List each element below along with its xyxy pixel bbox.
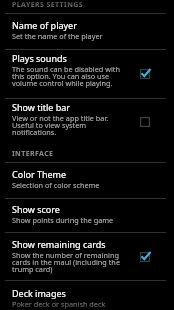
staticText: Show score [12,203,60,215]
staticText: Show points during the game [12,215,114,225]
staticText: Name of player [12,19,77,31]
staticText: Show the number of remaining cards in th… [12,250,125,274]
staticText: The sound can be disabled with this opti… [12,64,125,88]
staticText: View or not the app title bar. Useful to… [12,113,125,137]
staticText: PLAYERS SETTINGS [12,0,83,10]
staticText: Show title bar [12,101,71,113]
button[interactable]: Disabled [137,114,153,130]
button[interactable]: Enabled [137,66,153,82]
button[interactable]: Enabled [137,249,153,265]
button[interactable]: Show remaining cards [0,233,174,280]
staticText: Selection of color scheme [12,180,100,190]
button[interactable]: Show title bar [0,99,174,144]
button[interactable]: Deck images [0,281,174,310]
staticText: Color Theme [12,168,67,180]
staticText: Deck images [12,287,66,299]
button[interactable]: Name of player [0,14,174,49]
button[interactable]: Color Theme [0,163,174,198]
staticText: Plays sounds [12,52,67,64]
staticText: Show remaining cards [12,238,106,250]
button[interactable]: Plays sounds [0,50,174,98]
button[interactable]: Show score [0,199,174,232]
staticText: Set the name of the player [12,31,103,41]
staticText: INTERFACE [12,149,54,159]
staticText: Poker deck or spanish deck [12,299,106,309]
